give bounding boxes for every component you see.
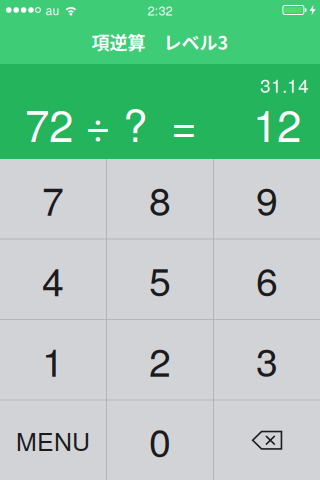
staticText: 2:32 [147,1,172,19]
button[interactable]: MENU [0,400,106,480]
button[interactable]: 6 [214,239,320,319]
staticText: 4 [42,251,64,307]
staticText: 1 [42,332,64,388]
button[interactable]: 1 [0,320,106,399]
staticText: 2 [149,332,171,388]
button[interactable]: 7 [0,159,106,238]
button[interactable]: 8 [107,159,213,238]
staticText: 6 [256,251,278,307]
button[interactable]: 0 [107,400,213,480]
button[interactable]: 2 [107,320,213,399]
staticText: 0 [149,412,171,468]
staticText: 9 [256,171,278,227]
staticText: 7 [42,171,64,227]
staticText: 8 [149,171,171,227]
button[interactable]: 4 [0,239,106,319]
button[interactable]: 3 [214,320,320,399]
staticText: 3 [256,332,278,388]
staticText: 12 [253,91,301,154]
staticText: 項逆算 レベル3 [91,29,228,55]
staticText: MENU [16,422,90,458]
staticText: 31.14 [260,71,309,98]
staticText: 72 ÷ ? = [25,91,197,154]
button[interactable]: 9 [214,159,320,238]
staticText: au [45,1,59,19]
button[interactable]: 5 [107,239,213,319]
button[interactable]: Delete [214,400,320,480]
staticText: 5 [149,251,171,307]
